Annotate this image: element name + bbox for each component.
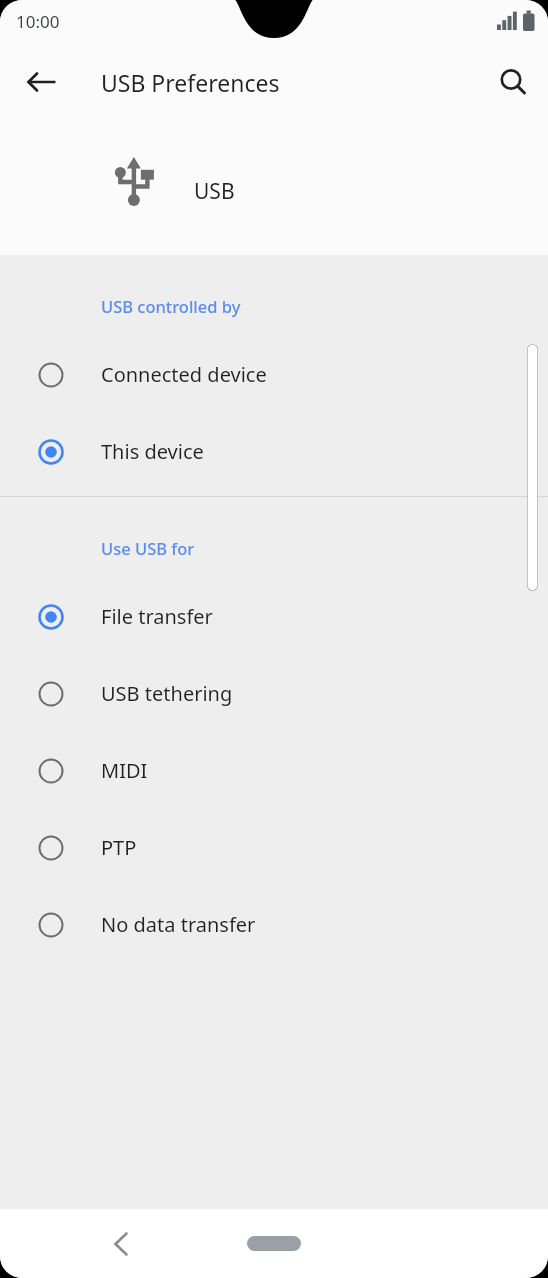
staticText: 10:00 [16, 10, 60, 33]
button[interactable]: This device [0, 413, 548, 490]
staticText: This device [101, 438, 204, 465]
staticText: MIDI [101, 757, 148, 784]
button[interactable]: Connected device [0, 336, 548, 413]
button[interactable]: PTP [0, 809, 548, 886]
button[interactable]: USB tethering [0, 655, 548, 732]
staticText: PTP [101, 834, 137, 861]
staticText: USB [194, 177, 235, 206]
button[interactable]: No data transfer [0, 886, 548, 963]
button[interactable]: File transfer [0, 578, 548, 655]
staticText: Connected device [101, 361, 267, 388]
button[interactable]: Search [489, 58, 537, 106]
staticText: File transfer [101, 603, 213, 630]
button[interactable]: Back [96, 1220, 144, 1268]
staticText: USB controlled by [101, 295, 241, 317]
staticText: No data transfer [101, 911, 256, 938]
button[interactable]: MIDI [0, 732, 548, 809]
staticText: Use USB for [101, 537, 195, 559]
staticText: USB Preferences [101, 67, 280, 98]
button[interactable]: Navigate up [18, 58, 66, 106]
staticText: USB tethering [101, 680, 233, 707]
button[interactable]: Home [247, 1236, 301, 1251]
